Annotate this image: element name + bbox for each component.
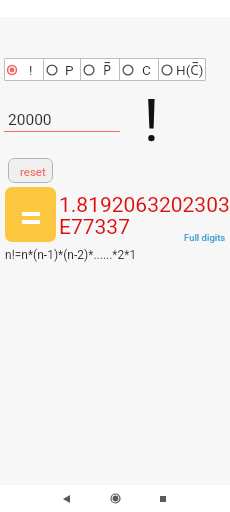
staticText: 20000 [8, 111, 52, 129]
staticText: P̅ [103, 61, 112, 79]
button[interactable]: ! [4, 58, 43, 81]
button[interactable]: H(C̅) [159, 58, 206, 81]
staticText: reset [20, 165, 46, 178]
button[interactable]: P [44, 58, 80, 81]
button[interactable]: Home [97, 485, 133, 512]
staticText: P [65, 62, 74, 78]
staticText: C [142, 62, 151, 78]
button[interactable]: Full digits [184, 232, 226, 243]
button[interactable]: Calculate [5, 187, 56, 242]
button[interactable]: reset [8, 158, 53, 183]
button[interactable]: Recent apps [145, 485, 181, 512]
button[interactable]: P̅ [81, 58, 119, 81]
button[interactable]: C [120, 58, 158, 81]
button[interactable]: Back [49, 485, 84, 512]
staticText: H(C̅) [176, 61, 204, 79]
staticText: ! [29, 62, 33, 78]
staticText: 1.8192063202303E77337 [59, 193, 230, 240]
staticText: n!=n*(n-1)*(n-2)*......*2*1 [5, 248, 137, 262]
staticText: Full digits [184, 232, 226, 243]
